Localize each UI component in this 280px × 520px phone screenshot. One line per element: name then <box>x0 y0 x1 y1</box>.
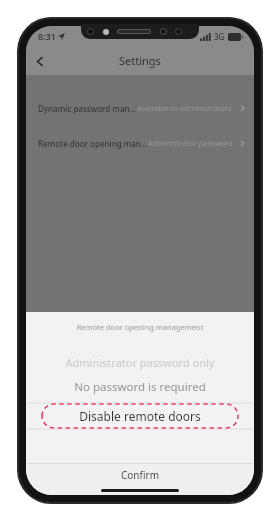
button[interactable]: Confirm <box>26 464 254 486</box>
staticText: Dynamic password man... <box>38 103 137 114</box>
staticText: 8:31 <box>38 30 56 42</box>
staticText: Administrator password only <box>148 138 239 148</box>
button[interactable]: No password is required <box>26 379 254 395</box>
staticText: Disable remote doors <box>79 408 201 424</box>
staticText: Settings <box>119 53 161 68</box>
button[interactable]: Remote door opening man... <box>26 132 254 154</box>
button[interactable]: Back <box>26 47 54 75</box>
button[interactable]: Disable remote doors <box>26 403 254 429</box>
button[interactable]: Administrator password only <box>26 355 254 370</box>
button[interactable]: Dynamic password man... <box>26 97 254 119</box>
staticText: Available to administrators only <box>137 103 239 113</box>
staticText: Confirm <box>121 468 160 482</box>
staticText: Remote door opening man... <box>38 138 148 149</box>
staticText: 3G <box>214 31 225 42</box>
staticText: Remote door opening management <box>26 322 254 332</box>
